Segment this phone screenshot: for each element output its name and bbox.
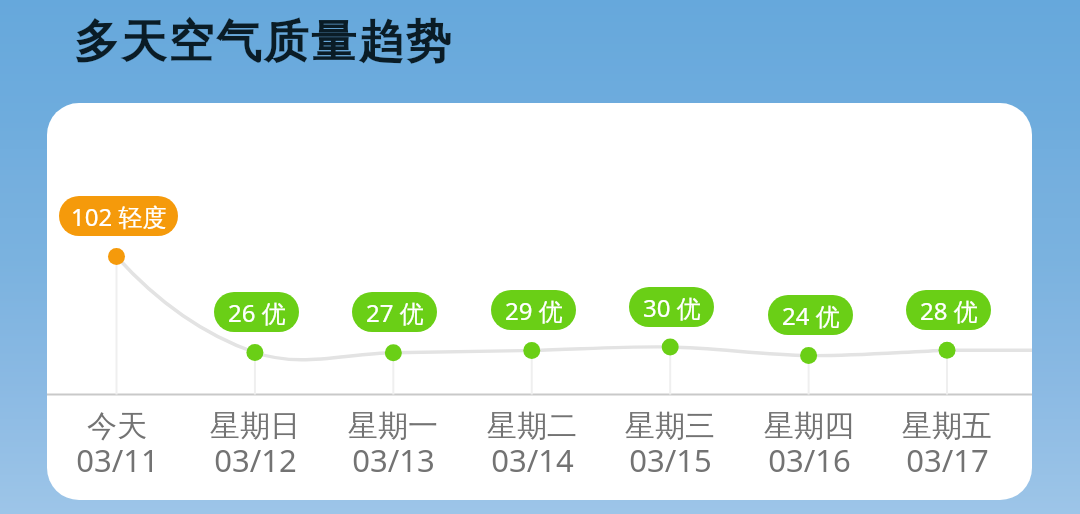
staticText: 03/14 [491,439,574,481]
staticText: 03/16 [768,439,851,481]
staticText: 27 优 [366,296,424,329]
staticText: 26 优 [228,296,286,329]
button[interactable]: 28 优 [906,290,991,330]
staticText: 今天 [87,407,147,445]
button[interactable]: 星期日 03/12 AQI 26 优 [186,292,324,500]
button[interactable]: 26 优 [214,292,299,332]
staticText: 星期三 [625,407,715,445]
button[interactable]: 30 优 [629,287,714,327]
button[interactable]: 24 优 [768,295,853,335]
staticText: 30 优 [643,291,701,324]
staticText: 29 优 [505,294,563,327]
staticText: 03/17 [906,439,989,481]
button[interactable]: 星期四 03/16 AQI 24 优 [739,295,877,500]
button[interactable]: 今天 03/11 AQI 102 轻度 [47,196,185,500]
button[interactable]: 星期三 03/15 AQI 30 优 [601,287,739,500]
button[interactable]: 102 轻度 [59,196,178,236]
staticText: 24 优 [782,299,840,332]
button[interactable]: 星期二 03/14 AQI 29 优 [463,290,601,500]
staticText: 星期日 [210,407,300,445]
staticText: 星期二 [487,407,577,445]
staticText: 03/13 [352,439,435,481]
button[interactable]: 星期一 03/13 AQI 27 优 [324,292,462,500]
staticText: 星期五 [902,407,992,445]
staticText: 星期一 [348,407,438,445]
staticText: 多天空气质量趋势 [74,14,454,71]
staticText: 03/11 [76,439,159,481]
button[interactable]: 29 优 [491,290,576,330]
button[interactable]: 星期五 03/17 AQI 28 优 [878,290,1016,500]
button[interactable]: 27 优 [352,292,437,332]
staticText: 03/12 [214,439,297,481]
staticText: 102 轻度 [71,200,167,233]
staticText: 03/15 [629,439,712,481]
staticText: 28 优 [920,294,978,327]
staticText: 星期四 [764,407,854,445]
